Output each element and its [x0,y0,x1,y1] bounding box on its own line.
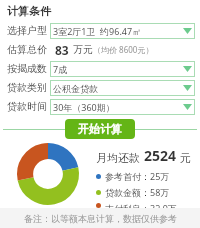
staticText: 估算总价 [7,43,47,56]
staticText: 公积金贷款 [53,83,98,94]
staticText: 备注：以等额本息计算，数据仅供参考 [24,213,177,224]
staticText: （均价 8600元） [93,44,154,55]
staticText: 按揭成数 [7,62,47,75]
staticText: 元 [180,151,191,165]
staticText: 月均还款 [96,151,140,165]
button[interactable]: 3室2厅1卫 约96.47㎡ [50,23,195,39]
staticText: 3室2厅1卫 约96.47㎡ [53,25,142,37]
staticText: 30年（360期） [53,101,115,113]
button[interactable]: 公积金贷款 [50,80,195,96]
staticText: 支付利息：32.9万 [105,202,177,208]
staticText: 选择户型 [7,24,47,37]
staticText: 贷款类别 [7,81,47,94]
staticText: 贷款时间 [7,100,47,113]
staticText: 计算条件 [7,4,51,18]
staticText: 2524 [144,146,177,165]
button[interactable]: 30年（360期） [50,99,195,115]
button[interactable]: 开始计算 [65,119,135,139]
button[interactable]: 7成 [50,61,195,77]
staticText: 万元 [73,43,93,56]
other: Loan breakdown chart [17,143,79,205]
staticText: 参考首付：25万 [105,170,170,182]
staticText: 83 [55,42,69,58]
staticText: 开始计算 [78,122,122,136]
staticText: 7成 [53,63,68,75]
staticText: 贷款金额：58万 [105,186,170,198]
